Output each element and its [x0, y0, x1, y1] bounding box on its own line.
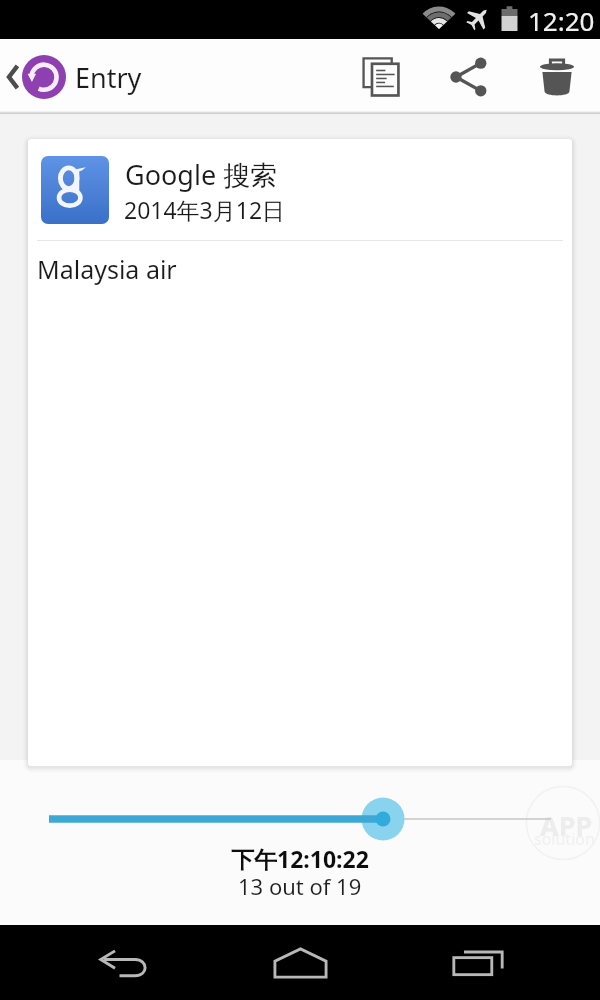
button[interactable]: Back	[0, 49, 152, 105]
staticText: 2014年3月12日	[124, 194, 286, 225]
button[interactable]: Copy	[345, 41, 417, 113]
staticText: APP	[540, 807, 593, 844]
staticText: 12:20	[528, 3, 595, 38]
staticText: Malaysia air	[37, 252, 177, 286]
staticText: solution	[534, 828, 595, 850]
button[interactable]: Home	[240, 925, 360, 1000]
button[interactable]: Recents	[416, 925, 536, 1000]
button[interactable]: Delete	[521, 41, 593, 113]
button[interactable]: Google 搜索	[28, 139, 572, 766]
other: Back	[7, 65, 18, 89]
staticText: 13 out of 19	[238, 871, 362, 901]
button[interactable]: Back	[64, 925, 184, 1000]
staticText: Entry	[75, 59, 142, 96]
staticText: 下午12:10:22	[231, 843, 369, 874]
button[interactable]: Share	[433, 41, 505, 113]
staticText: Google 搜索	[125, 156, 278, 193]
button[interactable]: Playback position	[0, 766, 600, 826]
